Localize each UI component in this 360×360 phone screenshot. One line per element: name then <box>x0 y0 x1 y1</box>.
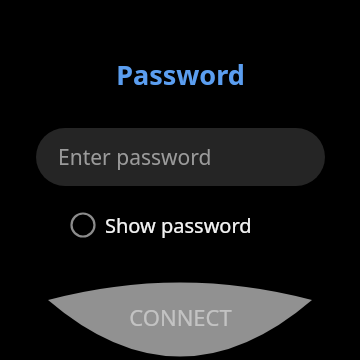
other: Show password checkbox <box>70 212 96 238</box>
staticText: CONNECT <box>129 302 232 332</box>
button[interactable]: Enter password <box>36 128 325 186</box>
button[interactable]: CONNECT <box>0 0 360 360</box>
staticText: Show password <box>105 212 252 239</box>
staticText: Enter password <box>58 143 212 172</box>
staticText: Password <box>116 56 245 93</box>
button[interactable]: Show password checkbox <box>70 206 252 244</box>
